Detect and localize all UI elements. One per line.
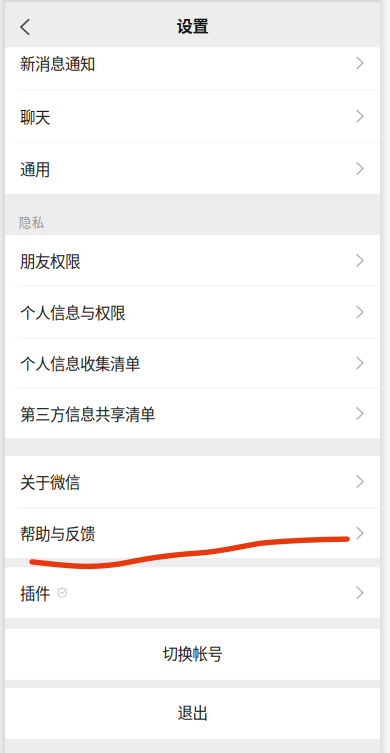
staticText: 个人信息收集清单 [20, 352, 140, 374]
button[interactable]: 退出 [5, 688, 380, 739]
staticText: 帮助与反馈 [20, 522, 95, 544]
staticText: 通用 [20, 157, 50, 180]
staticText: 退出 [177, 701, 207, 723]
button[interactable]: 第三方信息共享清单 [5, 388, 380, 438]
staticText: 设置 [176, 13, 208, 37]
button[interactable]: 帮助与反馈 [5, 508, 380, 558]
staticText: 新消息通知 [20, 52, 95, 74]
staticText: 朋友权限 [20, 249, 80, 272]
button[interactable]: 聊天 [5, 90, 380, 142]
staticText: 切换帐号 [162, 642, 222, 664]
button[interactable]: Back [5, 2, 46, 47]
button[interactable]: 个人信息收集清单 [5, 338, 380, 387]
staticText: 隐私 [19, 213, 45, 231]
button[interactable]: 新消息通知 [5, 47, 380, 89]
button[interactable]: 关于微信 [5, 456, 380, 507]
button[interactable]: 通用 [5, 143, 380, 194]
button[interactable]: 切换帐号 [5, 629, 380, 680]
staticText: 插件 [20, 581, 50, 604]
staticText: 个人信息与权限 [20, 301, 125, 323]
staticText: 第三方信息共享清单 [20, 402, 155, 425]
staticText: 聊天 [20, 105, 50, 127]
button[interactable]: 个人信息与权限 [5, 287, 380, 337]
button[interactable]: 插件 [5, 567, 380, 618]
staticText: 关于微信 [20, 470, 80, 493]
button[interactable]: 朋友权限 [5, 235, 380, 286]
